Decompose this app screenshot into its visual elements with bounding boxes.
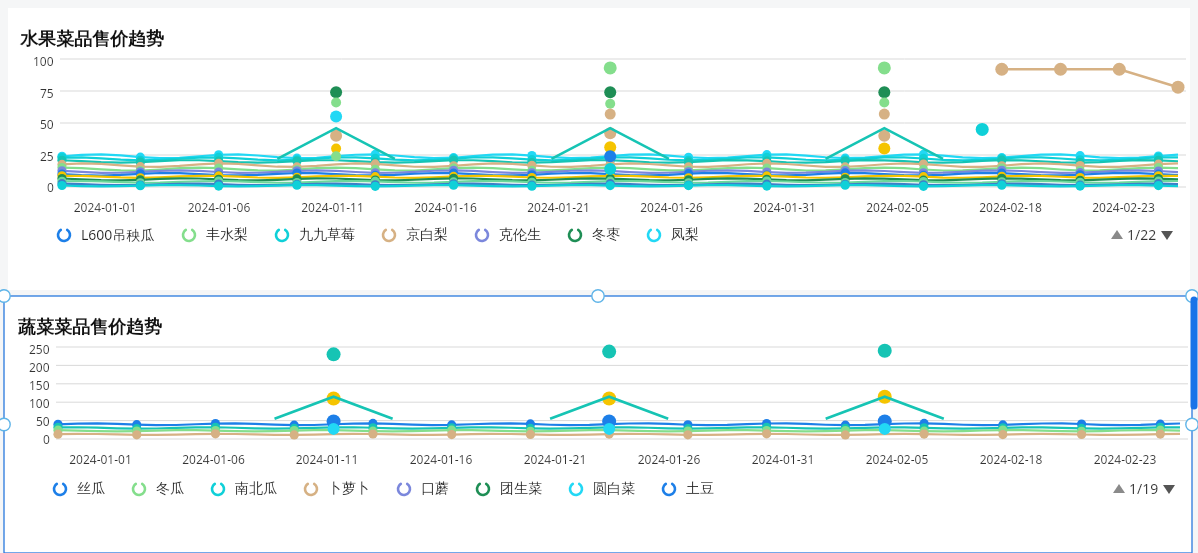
button[interactable]: 凤梨 xyxy=(646,226,699,244)
button[interactable]: 九九草莓 xyxy=(274,226,355,244)
staticText: 水果菜品售价趋势 xyxy=(20,28,164,51)
staticText: 2024-01-26 xyxy=(615,199,728,215)
staticText: 2024-02-05 xyxy=(840,451,954,467)
staticText: L600吊秧瓜 xyxy=(81,225,155,244)
staticText: 0 xyxy=(47,179,54,195)
staticText: 冬枣 xyxy=(592,226,620,244)
staticText: 2024-01-31 xyxy=(726,451,840,467)
staticText: 丝瓜 xyxy=(77,480,105,498)
staticText: 圆白菜 xyxy=(593,480,635,498)
staticText: 2024-01-16 xyxy=(384,451,498,467)
staticText: 口蘑 xyxy=(421,480,449,498)
staticText: 2024-01-06 xyxy=(162,199,276,215)
staticText: 50 xyxy=(36,413,50,429)
staticText: 克伦生 xyxy=(499,226,541,244)
staticText: 2024-01-11 xyxy=(276,199,389,215)
staticText: 九九草莓 xyxy=(299,226,355,244)
button[interactable]: 丰水梨 xyxy=(181,226,248,244)
button[interactable]: Page 1/22 xyxy=(1110,225,1174,244)
staticText: 2024-01-11 xyxy=(270,451,384,467)
staticText: 0 xyxy=(43,431,50,447)
button[interactable]: 口蘑 xyxy=(396,480,449,498)
staticText: 1/22 xyxy=(1127,225,1157,244)
staticText: 京白梨 xyxy=(406,226,448,244)
staticText: 2024-01-31 xyxy=(728,199,841,215)
staticText: 团生菜 xyxy=(500,480,542,498)
staticText: 75 xyxy=(40,85,54,101)
button[interactable]: 卜萝卜 xyxy=(303,480,370,498)
staticText: 2024-01-21 xyxy=(498,451,612,467)
staticText: 南北瓜 xyxy=(235,480,277,498)
staticText: 2024-01-26 xyxy=(612,451,726,467)
staticText: 2024-02-05 xyxy=(841,199,954,215)
button[interactable]: 冬瓜 xyxy=(131,480,184,498)
staticText: 200 xyxy=(29,359,50,375)
button[interactable]: L600吊秧瓜 xyxy=(56,225,155,244)
button[interactable]: 团生菜 xyxy=(475,480,542,498)
staticText: 2024-01-01 xyxy=(44,451,157,467)
staticText: 土豆 xyxy=(686,480,714,498)
button[interactable]: 京白梨 xyxy=(381,226,448,244)
staticText: 2024-02-18 xyxy=(954,451,1068,467)
button[interactable]: 蔬菜菜品售价趋势 xyxy=(4,296,1192,553)
staticText: 冬瓜 xyxy=(156,480,184,498)
staticText: 100 xyxy=(33,53,54,69)
staticText: 100 xyxy=(29,395,50,411)
button[interactable]: 水果菜品售价趋势 xyxy=(8,8,1190,290)
staticText: 2024-01-01 xyxy=(48,199,162,215)
staticText: 150 xyxy=(29,377,50,393)
button[interactable]: Page 1/19 xyxy=(1112,479,1176,498)
staticText: 蔬菜菜品售价趋势 xyxy=(18,316,162,339)
button[interactable]: 南北瓜 xyxy=(210,480,277,498)
staticText: 50 xyxy=(40,116,54,132)
staticText: 2024-01-06 xyxy=(157,451,270,467)
button[interactable]: 冬枣 xyxy=(567,226,620,244)
staticText: 2024-02-18 xyxy=(954,199,1067,215)
staticText: 2024-02-23 xyxy=(1068,451,1182,467)
button[interactable]: 土豆 xyxy=(661,480,714,498)
staticText: 凤梨 xyxy=(671,226,699,244)
staticText: 2024-01-21 xyxy=(502,199,615,215)
staticText: 250 xyxy=(29,341,50,357)
staticText: 2024-02-23 xyxy=(1067,199,1180,215)
button[interactable]: 克伦生 xyxy=(474,226,541,244)
staticText: 1/19 xyxy=(1129,479,1159,498)
staticText: 丰水梨 xyxy=(206,226,248,244)
button[interactable]: 圆白菜 xyxy=(568,480,635,498)
staticText: 卜萝卜 xyxy=(328,480,370,498)
button[interactable]: 丝瓜 xyxy=(52,480,105,498)
staticText: 2024-01-16 xyxy=(389,199,502,215)
staticText: 25 xyxy=(40,148,54,164)
